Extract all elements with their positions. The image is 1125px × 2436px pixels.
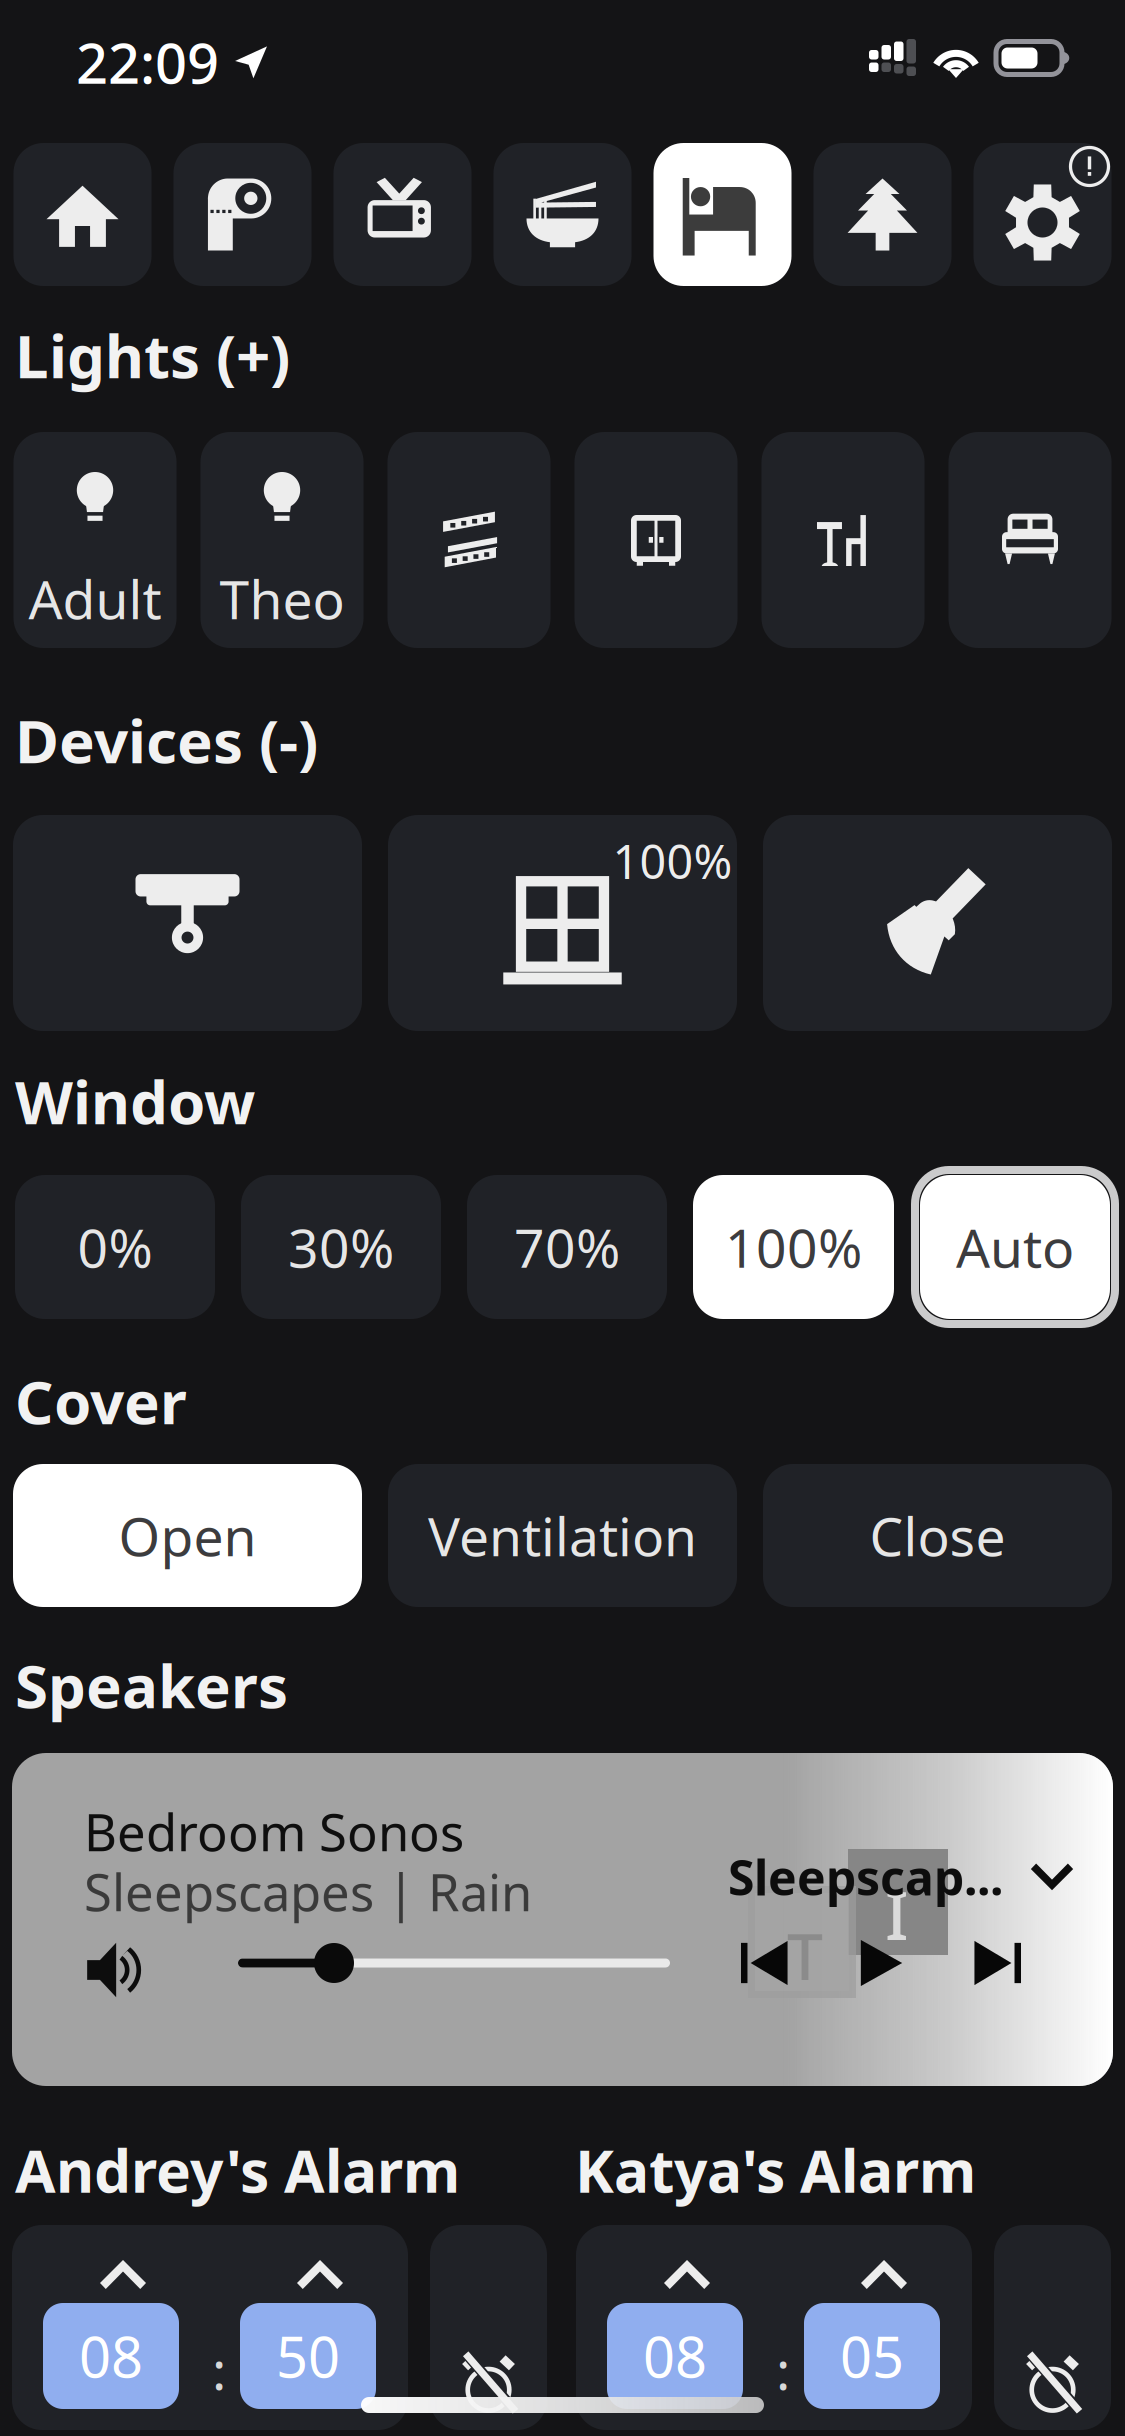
- staticText: 0%: [77, 1212, 152, 1282]
- button[interactable]: Increase hours: [98, 2247, 148, 2286]
- staticText: 08: [643, 2319, 707, 2393]
- staticText: Theo: [219, 563, 344, 634]
- button[interactable]: Play: [857, 1939, 905, 1987]
- staticText: 08: [79, 2319, 143, 2393]
- button[interactable]: Wardrobe: [574, 432, 737, 648]
- staticText: Lights (+): [15, 315, 290, 395]
- button[interactable]: Home: [13, 143, 151, 286]
- staticText: 22:09: [76, 25, 219, 99]
- staticText: 30%: [288, 1212, 394, 1282]
- button[interactable]: Ceiling light: [13, 815, 362, 1031]
- button[interactable]: Disable alarm: [430, 2225, 547, 2430]
- staticText: Katya's Alarm: [575, 2131, 976, 2209]
- staticText: Close: [869, 1500, 1005, 1571]
- staticText: :: [776, 2334, 790, 2405]
- button[interactable]: Disable alarm: [994, 2225, 1111, 2430]
- staticText: Adult: [28, 563, 161, 634]
- staticText: Window: [15, 1061, 255, 1141]
- staticText: :: [212, 2334, 226, 2405]
- staticText: Sleepscapes | Rain: [84, 1858, 532, 1925]
- button[interactable]: Bathroom: [173, 143, 311, 286]
- staticText: T: [787, 1913, 823, 1998]
- button[interactable]: Vacuum: [763, 815, 1112, 1031]
- staticText: Speakers: [15, 1645, 288, 1725]
- button[interactable]: Settings: [973, 143, 1111, 286]
- button[interactable]: Increase minutes: [295, 2247, 345, 2286]
- button[interactable]: Auto: [920, 1175, 1110, 1319]
- button[interactable]: 08: [607, 2303, 743, 2409]
- button[interactable]: Window 100 percent: [388, 815, 737, 1031]
- button[interactable]: Close: [763, 1464, 1112, 1607]
- staticText: Cover: [15, 1361, 187, 1441]
- staticText: 50: [276, 2319, 340, 2393]
- button[interactable]: Living room: [333, 143, 471, 286]
- staticText: 100%: [725, 1212, 862, 1282]
- button[interactable]: Ventilation: [388, 1464, 737, 1607]
- staticText: Devices (-): [15, 700, 318, 780]
- button[interactable]: Bedroom: [653, 143, 791, 286]
- button[interactable]: Previous track: [741, 1939, 789, 1987]
- button[interactable]: Garden: [813, 143, 951, 286]
- staticText: Sleepscap...: [728, 1845, 1003, 1909]
- button[interactable]: Theo: [200, 432, 363, 648]
- button[interactable]: 05: [804, 2303, 940, 2409]
- staticText: Open: [118, 1500, 256, 1571]
- staticText: Bedroom Sonos: [84, 1798, 464, 1865]
- button[interactable]: Open: [13, 1464, 362, 1607]
- button[interactable]: 50: [240, 2303, 376, 2409]
- button[interactable]: Next track: [973, 1939, 1021, 1987]
- button[interactable]: Floor lamp: [761, 432, 924, 648]
- staticText: Auto: [956, 1212, 1074, 1282]
- button[interactable]: Adult: [13, 432, 176, 648]
- staticText: Ventilation: [428, 1500, 697, 1571]
- button[interactable]: 100%: [693, 1175, 894, 1319]
- button[interactable]: Bed light: [948, 432, 1111, 648]
- button[interactable]: Blinds: [387, 432, 550, 648]
- button[interactable]: 08: [43, 2303, 179, 2409]
- button[interactable]: 70%: [467, 1175, 667, 1319]
- staticText: 100%: [612, 830, 732, 892]
- staticText: 05: [840, 2319, 904, 2393]
- staticText: Andrey's Alarm: [15, 2131, 460, 2209]
- button[interactable]: Kitchen: [493, 143, 631, 286]
- staticText: 70%: [514, 1212, 620, 1282]
- button[interactable]: 30%: [241, 1175, 441, 1319]
- staticText: I: [885, 1870, 909, 1958]
- button[interactable]: 0%: [15, 1175, 215, 1319]
- button[interactable]: Increase minutes: [859, 2247, 909, 2286]
- button[interactable]: Increase hours: [662, 2247, 712, 2286]
